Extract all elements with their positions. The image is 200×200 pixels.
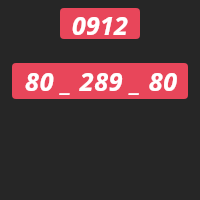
staticText: 80 _ 289 _ 80 [25,64,178,98]
button[interactable]: Number 80 289 80 [12,63,188,99]
staticText: 0912 [72,8,128,39]
button[interactable]: Prefix 0912 [60,8,140,39]
